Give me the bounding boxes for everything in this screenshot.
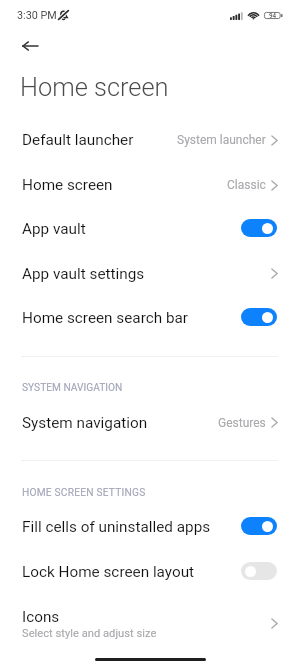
- button[interactable]: [0, 213, 300, 258]
- staticText: 94: [269, 12, 277, 19]
- staticText: 3:30 PM: [17, 9, 57, 22]
- button[interactable]: [241, 219, 277, 237]
- staticText: HOME SCREEN SETTINGS: [22, 487, 146, 499]
- button[interactable]: [0, 555, 300, 600]
- staticText: Classic: [227, 178, 266, 192]
- staticText: Home screen: [22, 176, 113, 194]
- staticText: App vault: [22, 220, 86, 238]
- staticText: Select style and adjust size: [22, 627, 157, 640]
- staticText: Gestures: [218, 416, 266, 430]
- button[interactable]: [0, 257, 300, 302]
- button[interactable]: [0, 599, 300, 646]
- staticText: Icons: [22, 608, 60, 626]
- staticText: Fill cells of uninstalled apps: [22, 518, 211, 536]
- button[interactable]: [241, 562, 277, 580]
- staticText: System navigation: [22, 414, 148, 432]
- button[interactable]: [0, 406, 300, 451]
- button[interactable]: [0, 168, 300, 213]
- button[interactable]: [241, 517, 277, 535]
- staticText: App vault settings: [22, 265, 145, 283]
- staticText: SYSTEM NAVIGATION: [22, 382, 123, 394]
- button[interactable]: [0, 510, 300, 555]
- button[interactable]: Back: [8, 24, 52, 68]
- button[interactable]: [0, 302, 300, 347]
- staticText: Default launcher: [22, 131, 134, 149]
- button[interactable]: [0, 124, 300, 169]
- staticText: Home screen search bar: [22, 309, 189, 327]
- button[interactable]: [241, 308, 277, 326]
- staticText: System launcher: [177, 133, 266, 147]
- staticText: Home screen: [20, 72, 169, 102]
- staticText: Lock Home screen layout: [22, 563, 195, 581]
